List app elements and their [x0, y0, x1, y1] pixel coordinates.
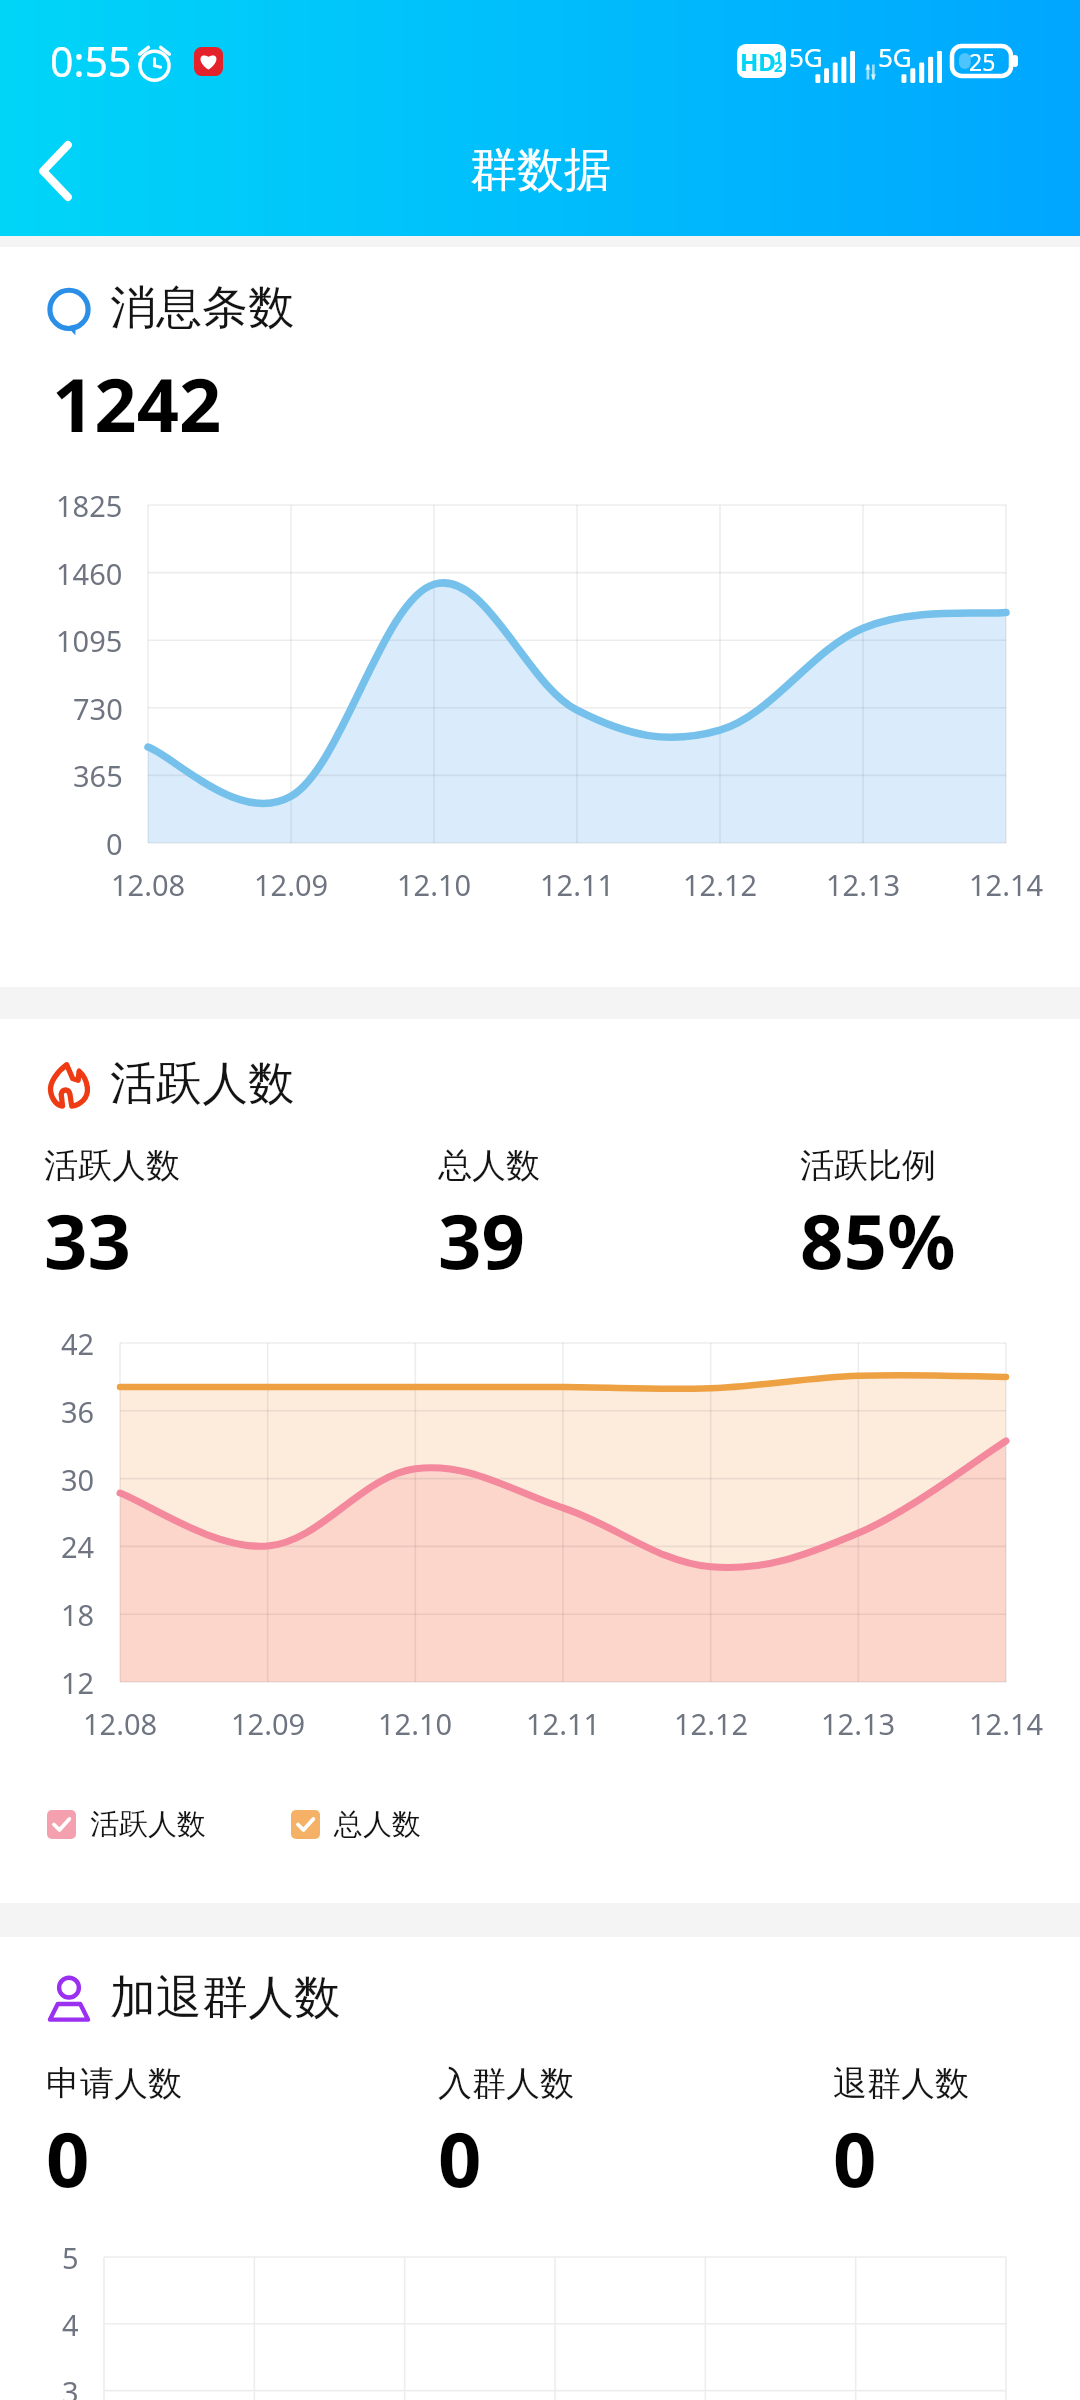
- staticText: 12.11: [540, 865, 615, 904]
- staticText: 消息条数: [110, 279, 294, 337]
- button[interactable]: 申请人数: [46, 2062, 182, 2210]
- staticText: 群数据: [470, 141, 611, 200]
- staticText: 入群人数: [438, 2062, 574, 2105]
- staticText: 24: [61, 1527, 95, 1566]
- staticText: 12.10: [378, 1704, 453, 1743]
- staticText: 42: [61, 1324, 95, 1363]
- staticText: 12.14: [969, 1704, 1044, 1743]
- staticText: 12.09: [231, 1704, 306, 1743]
- staticText: 18: [61, 1595, 95, 1634]
- staticText: 活跃人数: [90, 1806, 206, 1843]
- staticText: 活跃人数: [44, 1144, 180, 1187]
- staticText: 85%: [800, 1188, 956, 1292]
- staticText: 5: [62, 2238, 79, 2277]
- staticText: 2: [774, 56, 783, 76]
- staticText: 5G: [789, 39, 823, 74]
- button[interactable]: 活跃人数: [44, 1144, 180, 1292]
- button[interactable]: Back: [0, 115, 112, 227]
- button[interactable]: 活跃人数: [47, 1806, 206, 1843]
- staticText: HD: [740, 45, 776, 78]
- staticText: 活跃比例: [800, 1144, 936, 1187]
- staticText: 0: [438, 2106, 482, 2210]
- button[interactable]: 加退群人数: [46, 1969, 340, 2027]
- staticText: 12.08: [111, 865, 186, 904]
- staticText: 申请人数: [46, 2062, 182, 2105]
- staticText: 36: [61, 1392, 95, 1431]
- staticText: 39: [438, 1188, 525, 1292]
- staticText: 0: [46, 2106, 90, 2210]
- button[interactable]: 活跃人数: [46, 1055, 294, 1113]
- staticText: 0: [106, 824, 123, 863]
- button[interactable]: 活跃比例: [800, 1144, 956, 1292]
- staticText: 0: [833, 2106, 877, 2210]
- staticText: 12.09: [254, 865, 329, 904]
- button[interactable]: 入群人数: [438, 2062, 574, 2210]
- staticText: 12.13: [826, 865, 901, 904]
- staticText: 730: [73, 689, 123, 728]
- staticText: 12: [61, 1663, 95, 1702]
- staticText: 12.12: [674, 1704, 749, 1743]
- staticText: 12.14: [969, 865, 1044, 904]
- staticText: 4: [62, 2305, 79, 2344]
- staticText: 1095: [56, 621, 123, 660]
- staticText: 33: [44, 1188, 131, 1292]
- staticText: 30: [61, 1460, 95, 1499]
- staticText: 5G: [878, 39, 912, 74]
- staticText: 总人数: [438, 1144, 540, 1187]
- button[interactable]: 总人数: [291, 1806, 421, 1843]
- staticText: 加退群人数: [110, 1969, 340, 2027]
- staticText: 1825: [56, 486, 123, 525]
- staticText: 3: [62, 2372, 79, 2400]
- staticText: 1242: [52, 353, 222, 454]
- staticText: 12.12: [683, 865, 758, 904]
- staticText: 总人数: [334, 1806, 421, 1843]
- staticText: 12.13: [821, 1704, 896, 1743]
- staticText: 12.11: [526, 1704, 601, 1743]
- button[interactable]: 消息条数: [46, 279, 294, 337]
- staticText: 12.08: [83, 1704, 158, 1743]
- staticText: 25: [969, 46, 996, 76]
- staticText: 12.10: [397, 865, 472, 904]
- staticText: 1460: [56, 554, 123, 593]
- staticText: 退群人数: [833, 2062, 969, 2105]
- staticText: 活跃人数: [110, 1055, 294, 1113]
- staticText: 365: [73, 756, 123, 795]
- button[interactable]: 总人数: [438, 1144, 540, 1292]
- staticText: 1: [774, 46, 783, 66]
- staticText: 0:55: [50, 33, 132, 89]
- button[interactable]: 退群人数: [833, 2062, 969, 2210]
